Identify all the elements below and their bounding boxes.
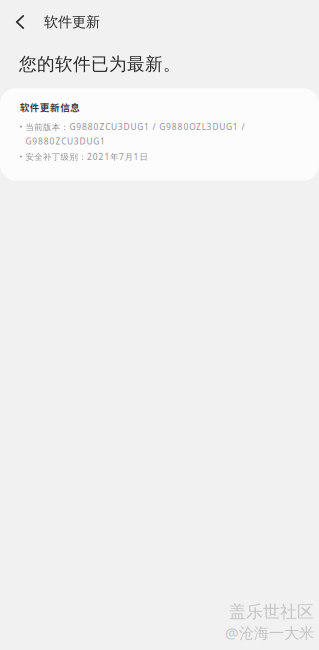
staticText: 软件更新信息: [20, 100, 80, 114]
staticText: 盖乐世社区: [229, 601, 314, 622]
button[interactable]: 软件更新: [40, 1, 100, 43]
staticText: 当前版本：G9880ZCU3DUG1 / G9880OZL3DUG1 / G98…: [25, 121, 244, 147]
staticText: 您的软件已为最新。: [19, 53, 181, 75]
staticText: @沧海一大米: [225, 622, 314, 643]
staticText: 软件更新: [44, 13, 100, 31]
staticText: 安全补丁级别：2021年7月1日: [25, 151, 147, 162]
button[interactable]: 返回: [0, 0, 40, 44]
